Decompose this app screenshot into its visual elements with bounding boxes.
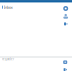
- button[interactable]: Sound: [63, 67, 67, 72]
- button[interactable]: Capture: [63, 60, 67, 64]
- staticText: Inbox: [4, 4, 13, 10]
- button[interactable]: Settings: [63, 6, 68, 11]
- button[interactable]: Sound: [63, 22, 68, 26]
- button[interactable]: Inbox: [2, 4, 13, 10]
- button[interactable]: Account: [63, 14, 68, 19]
- staticText: regarder: [2, 57, 14, 61]
